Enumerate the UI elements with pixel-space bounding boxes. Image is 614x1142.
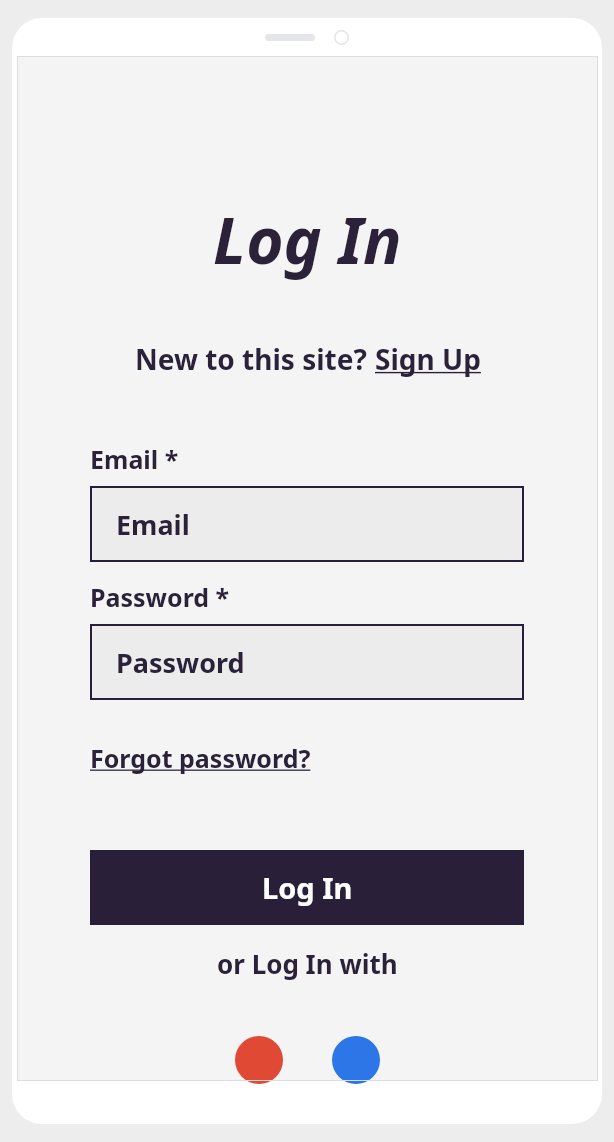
staticText: Email [116, 506, 190, 543]
staticText: Log In [213, 196, 402, 283]
button[interactable]: Password [90, 624, 524, 700]
staticText: New to this site? [135, 340, 375, 378]
staticText: Email * [90, 442, 179, 476]
button[interactable]: Sign Up [375, 340, 481, 378]
staticText: Log In [262, 868, 353, 907]
staticText: Password * [90, 580, 230, 614]
button[interactable]: Log in with Google [235, 1036, 283, 1084]
staticText: or Log In with [217, 946, 398, 981]
staticText: Sign Up [375, 340, 481, 378]
button[interactable]: Log in with Facebook [332, 1036, 380, 1084]
staticText: Password [116, 644, 245, 681]
button[interactable]: Forgot password? [90, 741, 311, 775]
button[interactable]: Log In [90, 850, 524, 925]
button[interactable]: Email [90, 486, 524, 562]
staticText: Forgot password? [90, 741, 311, 775]
